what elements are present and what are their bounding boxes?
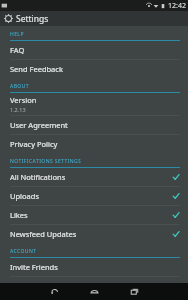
staticText: NOTIFICATIONS SETTINGS xyxy=(10,158,82,165)
staticText: All Notifications xyxy=(10,172,66,182)
button[interactable]: Version xyxy=(0,93,188,116)
staticText: HELP xyxy=(10,31,24,38)
staticText: ACCOUNT xyxy=(10,248,37,255)
staticText: User Agreement xyxy=(10,120,68,130)
button[interactable]: Invite Friends xyxy=(0,258,188,277)
staticText: Invite Friends xyxy=(10,262,58,272)
button[interactable]: Privacy Policy xyxy=(0,135,188,153)
button[interactable]: Likes xyxy=(0,206,188,225)
staticText: Likes xyxy=(10,210,28,220)
other: App icon xyxy=(4,14,13,23)
staticText: ABOUT xyxy=(10,83,29,90)
button[interactable]: Send Feedback xyxy=(0,60,188,78)
button[interactable]: Uploads xyxy=(0,187,188,206)
button[interactable]: Home xyxy=(74,283,114,300)
staticText: 1.2.13 xyxy=(10,106,26,113)
staticText: Privacy Policy xyxy=(10,139,58,149)
button[interactable]: Back xyxy=(34,283,74,300)
staticText: Newsfeed Updates xyxy=(10,229,77,239)
button[interactable]: FAQ xyxy=(0,41,188,60)
button[interactable]: Recent apps xyxy=(114,283,154,300)
staticText: Send Feedback xyxy=(10,64,63,74)
staticText: Uploads xyxy=(10,191,39,201)
button[interactable]: Newsfeed Updates xyxy=(0,225,188,243)
button[interactable]: User Agreement xyxy=(0,116,188,135)
staticText: 12:42 xyxy=(168,1,186,11)
staticText: FAQ xyxy=(10,45,25,55)
staticText: Version xyxy=(10,95,37,105)
staticText: Settings xyxy=(16,13,49,25)
button[interactable]: All Notifications xyxy=(0,168,188,187)
